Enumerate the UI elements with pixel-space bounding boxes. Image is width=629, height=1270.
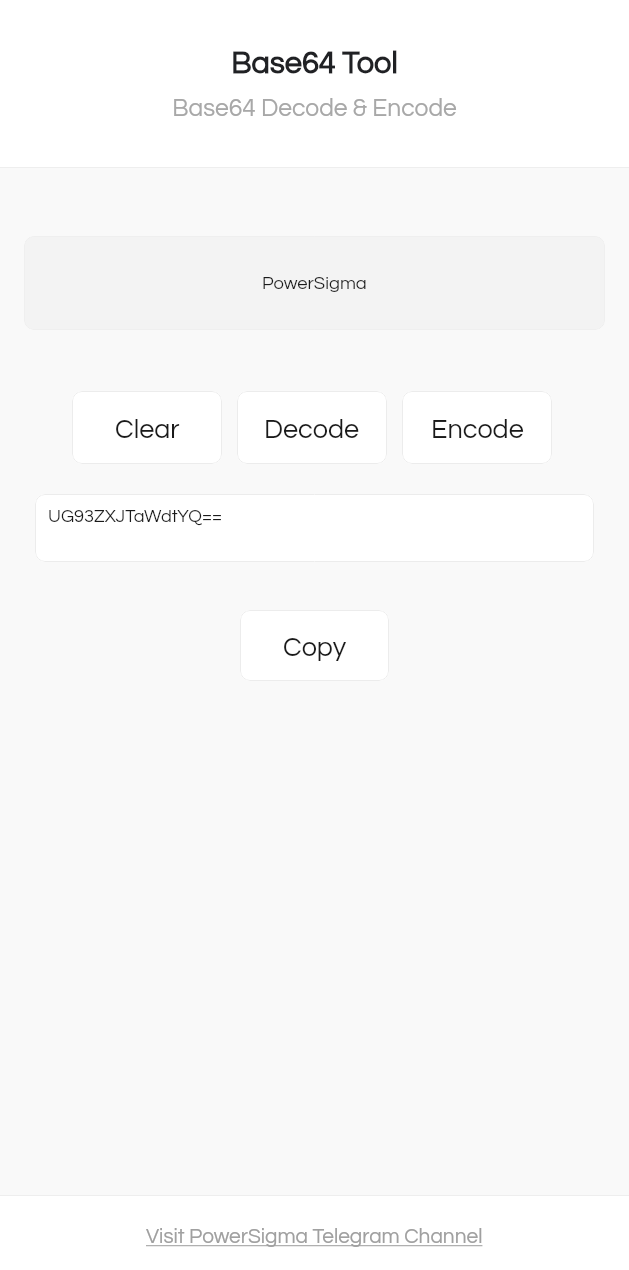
button[interactable]: Encode: [402, 391, 552, 464]
staticText: UG93ZXJTaWdtYQ==: [48, 507, 222, 526]
button[interactable]: Decode: [237, 391, 387, 464]
button[interactable]: UG93ZXJTaWdtYQ==: [35, 494, 594, 562]
staticText: Base64 Tool: [231, 48, 398, 80]
staticText: Decode: [264, 416, 360, 444]
button[interactable]: PowerSigma: [24, 236, 605, 330]
staticText: Base64 Decode & Encode: [172, 96, 457, 121]
staticText: PowerSigma: [262, 274, 367, 293]
button[interactable]: Visit PowerSigma Telegram Channel: [146, 1219, 483, 1248]
staticText: Copy: [283, 634, 347, 662]
staticText: Clear: [115, 416, 180, 444]
button[interactable]: Clear: [72, 391, 222, 464]
staticText: Encode: [431, 416, 524, 444]
button[interactable]: Copy: [240, 610, 389, 681]
